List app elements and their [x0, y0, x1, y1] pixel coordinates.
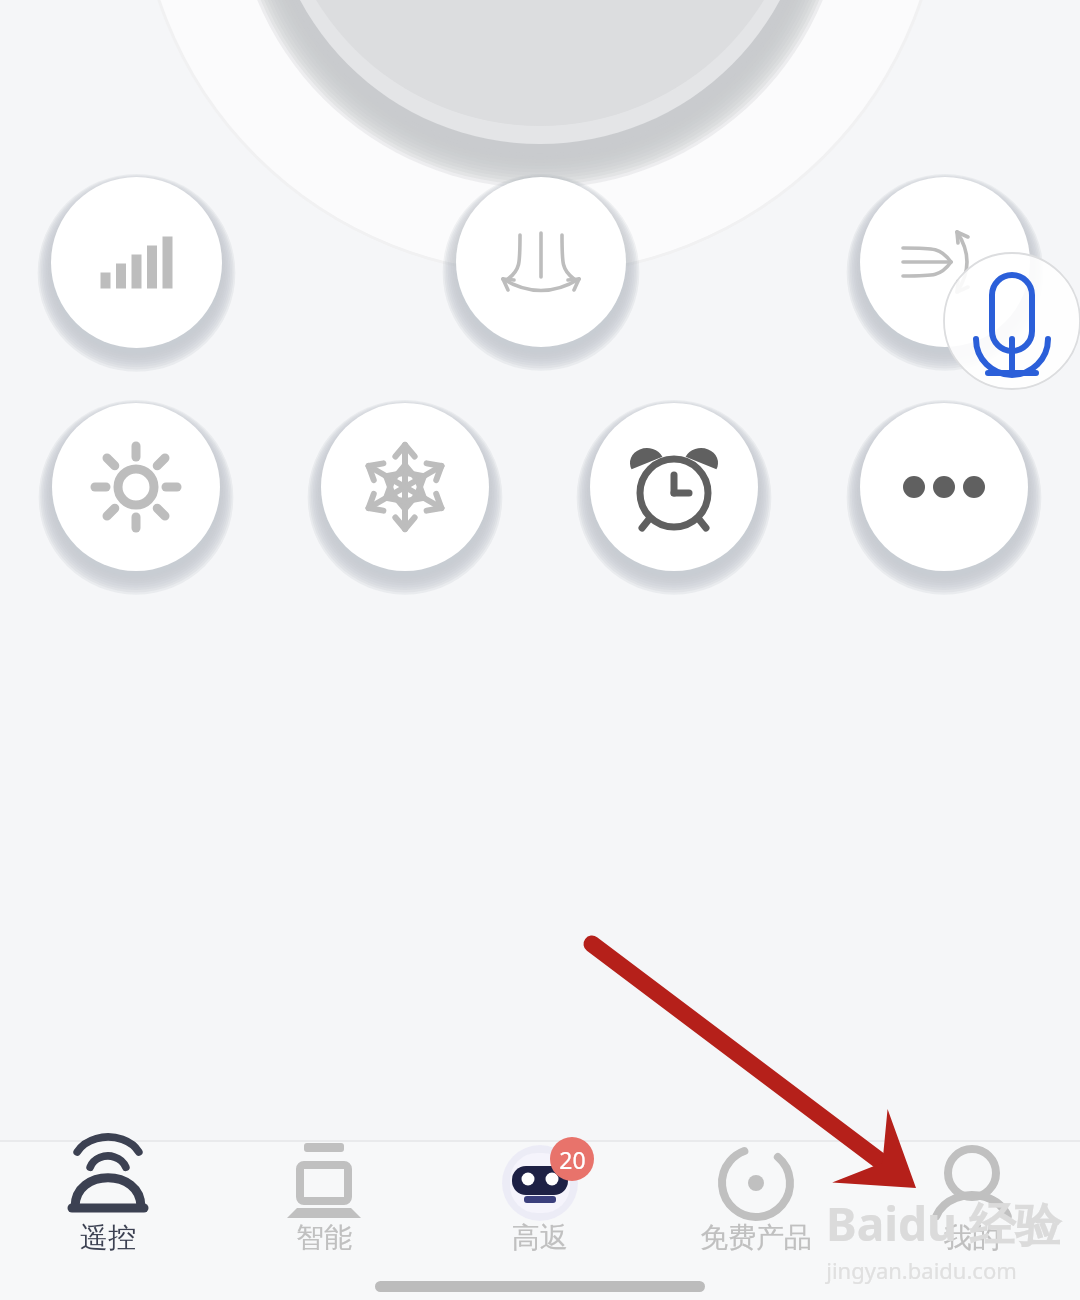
staticText: 高返	[512, 1220, 568, 1255]
staticText: 20	[559, 1144, 586, 1175]
button[interactable]: 智能	[216, 1142, 432, 1272]
staticText: jingyan.baidu.com	[826, 1255, 1017, 1285]
staticText: 免费产品	[700, 1220, 812, 1255]
staticText: 我的	[944, 1220, 1000, 1255]
button[interactable]: Timer	[590, 403, 758, 571]
button[interactable]: 我的	[864, 1142, 1080, 1272]
staticText: Baidu 经验	[826, 1192, 1061, 1255]
button[interactable]: Brightness	[52, 403, 220, 571]
button[interactable]: Vertical swing	[456, 177, 626, 347]
button[interactable]: 遥控	[0, 1142, 216, 1272]
button[interactable]: Voice control	[944, 253, 1080, 389]
button[interactable]: 20	[432, 1142, 648, 1272]
button[interactable]: Cool mode	[321, 403, 489, 571]
staticText: 遥控	[80, 1220, 136, 1255]
staticText: 智能	[296, 1220, 352, 1255]
button[interactable]: Fan speed	[51, 177, 222, 348]
button[interactable]: More	[860, 403, 1028, 571]
button[interactable]: 免费产品	[648, 1142, 864, 1272]
button[interactable]: Horizontal swing	[860, 177, 1030, 347]
